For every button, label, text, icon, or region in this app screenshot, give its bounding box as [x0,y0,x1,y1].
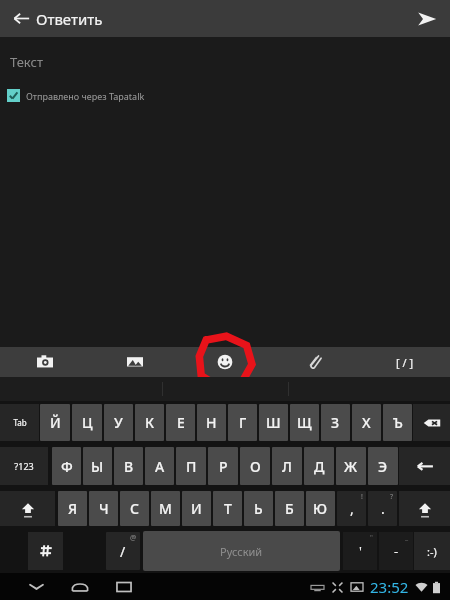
button[interactable]: Emoji [180,347,270,377]
button[interactable]: Д [304,447,334,485]
staticText: О [250,457,261,476]
button[interactable]: З [321,404,350,441]
button[interactable]: Русский [143,531,340,571]
button[interactable]: Отправлено через Tapatalk [7,89,145,102]
staticText: Д [314,457,325,476]
button[interactable]: :-) [414,532,450,570]
button[interactable]: Backspace [413,404,450,441]
button[interactable]: М [151,491,180,526]
staticText: Т [224,499,232,518]
button[interactable]: Р [208,447,238,485]
button[interactable]: Hide keyboard [14,573,58,600]
staticText: :-) [427,544,437,559]
button[interactable]: С [120,491,149,526]
button[interactable]: Ш [259,404,288,441]
button[interactable]: Ц [72,404,102,441]
staticText: У [114,413,123,432]
button[interactable]: Ъ [383,404,412,441]
button[interactable]: Е [166,404,195,441]
staticText: _ [405,533,409,543]
button[interactable]: К [135,404,164,441]
button[interactable]: Ф [52,447,81,485]
staticText: [ / ] [396,355,414,370]
button[interactable]: Г [228,404,257,441]
button[interactable]: Ь [244,491,273,526]
staticText: ? [390,492,394,502]
button[interactable]: Image [90,347,180,377]
button[interactable]: Й [40,404,70,441]
staticText: Ъ [393,413,403,432]
button[interactable]: Back [0,0,42,37]
staticText: Р [219,457,228,476]
button[interactable]: Ю [306,491,335,526]
button[interactable]: Т [213,491,242,526]
staticText: 23:52 [370,577,409,597]
button[interactable]: Recent apps [102,573,146,600]
button[interactable]: Enter [399,447,450,485]
button[interactable]: Home [58,573,102,600]
staticText: В [124,457,134,476]
button[interactable]: ? [368,491,397,526]
button[interactable]: Camera [0,347,90,377]
staticText: К [145,413,155,432]
button[interactable]: Shift [399,491,450,526]
button[interactable]: Н [197,404,226,441]
button[interactable]: @ [106,532,140,570]
button[interactable]: О [240,447,270,485]
staticText: А [155,457,165,476]
button[interactable]: Б [275,491,304,526]
staticText: Й [50,413,61,432]
button[interactable]: Ы [83,447,112,485]
staticText: Русский [220,544,263,559]
staticText: ! [361,492,363,502]
button[interactable]: Я [58,491,87,526]
button[interactable]: Attach file [270,347,360,377]
staticText: М [159,499,172,518]
button[interactable]: [ / ] [360,347,450,377]
button[interactable]: ! [337,491,366,526]
button[interactable]: Tab [0,404,39,441]
button[interactable]: Ч [89,491,118,526]
button[interactable]: _ [379,532,413,570]
button[interactable]: П [176,447,206,485]
button[interactable]: Change input method [28,532,63,570]
button[interactable]: У [104,404,133,441]
button[interactable]: Shift [0,491,55,526]
button[interactable]: А [145,447,174,485]
staticText: ' [359,542,362,560]
staticText: Ю [313,499,328,518]
button[interactable]: В [114,447,143,485]
button[interactable]: ?123 [0,447,48,485]
staticText: Ы [91,457,104,476]
staticText: Ф [61,457,73,476]
staticText: П [186,457,197,476]
button[interactable]: Щ [290,404,319,441]
staticText: ?123 [14,460,34,472]
staticText: Отправлено через Tapatalk [26,90,145,102]
staticText: " [370,533,373,543]
staticText: Б [285,499,294,518]
button[interactable]: " [343,532,377,570]
staticText: Щ [297,413,312,432]
staticText: Л [282,457,292,476]
button[interactable]: И [182,491,211,526]
staticText: Ц [82,413,93,432]
staticText: С [130,499,139,518]
button[interactable]: Ж [336,447,366,485]
staticText: И [191,499,202,518]
button[interactable]: Х [352,404,381,441]
staticText: Н [206,413,217,432]
staticText: Г [239,413,247,432]
button[interactable]: Send [404,0,450,37]
staticText: Ь [254,499,263,518]
staticText: , [350,499,354,518]
staticText: Tab [13,417,27,428]
staticText: Ответить [36,9,103,29]
staticText: @ [130,533,137,543]
button[interactable]: Л [272,447,302,485]
staticText: Х [362,413,371,432]
button[interactable]: Э [368,447,398,485]
